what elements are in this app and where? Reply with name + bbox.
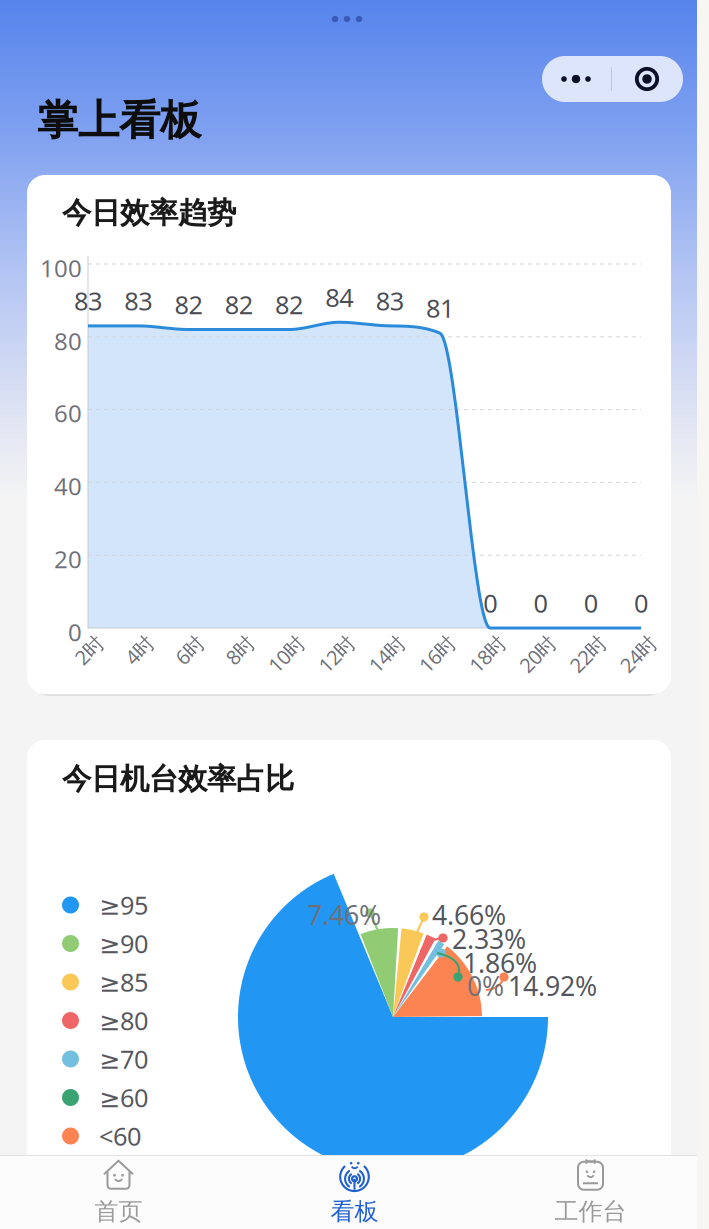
button[interactable]: 首页 [0, 1155, 236, 1229]
staticText: 82 [275, 287, 303, 321]
staticText: 80 [54, 325, 82, 357]
button[interactable]: ≥85 [62, 966, 172, 998]
staticText: <60 [99, 1119, 141, 1153]
button[interactable]: ≥70 [62, 1043, 172, 1075]
staticText: 83 [124, 284, 152, 317]
staticText: 看板 [330, 1197, 378, 1226]
staticText: 6时 [169, 626, 200, 652]
staticText: 0 [533, 586, 547, 620]
button[interactable]: 看板 [236, 1155, 472, 1229]
staticText: 今日机台效率占比 [62, 761, 294, 797]
staticText: 4.66% [432, 897, 506, 932]
staticText: 22时 [561, 626, 603, 652]
staticText: 100 [40, 252, 82, 284]
staticText: 2.33% [452, 921, 526, 956]
staticText: 1.86% [463, 945, 537, 980]
staticText: 14时 [360, 626, 402, 652]
button[interactable]: 工作台 [472, 1155, 708, 1229]
staticText: 0 [584, 586, 598, 620]
staticText: 7.46% [307, 897, 381, 932]
staticText: 0 [483, 586, 497, 620]
staticText: 10时 [259, 626, 301, 652]
staticText: 2时 [69, 626, 100, 652]
staticText: ≥60 [99, 1081, 148, 1114]
staticText: 18时 [460, 626, 502, 652]
staticText: 82 [225, 287, 253, 321]
staticText: 首页 [94, 1197, 142, 1226]
button[interactable]: <60 [62, 1120, 172, 1152]
button[interactable]: ≥95 [62, 889, 172, 921]
staticText: ≥70 [99, 1042, 148, 1076]
staticText: 0% [467, 968, 504, 1003]
staticText: 82 [174, 287, 202, 321]
staticText: ≥80 [99, 1004, 148, 1037]
button[interactable]: ≥80 [62, 1004, 172, 1036]
staticText: 84 [325, 280, 353, 314]
staticText: 今日效率趋势 [62, 195, 236, 231]
staticText: 0 [634, 586, 648, 620]
staticText: 83 [376, 284, 404, 317]
staticText: 20 [54, 543, 82, 575]
staticText: ≥90 [99, 927, 148, 960]
button[interactable]: ≥60 [62, 1081, 172, 1113]
staticText: 40 [54, 470, 82, 502]
staticText: 14.92% [508, 968, 597, 1003]
staticText: 83 [74, 284, 102, 317]
button[interactable]: More [542, 56, 611, 102]
button[interactable]: ≥90 [62, 927, 172, 959]
staticText: 81 [426, 291, 454, 325]
staticText: ≥85 [99, 965, 148, 999]
staticText: 8时 [220, 626, 251, 652]
staticText: 工作台 [554, 1197, 626, 1226]
staticText: 12时 [309, 626, 351, 652]
staticText: 24时 [611, 626, 653, 652]
staticText: 掌上看板 [37, 95, 201, 146]
staticText: 20时 [510, 626, 552, 652]
staticText: ≥95 [99, 888, 148, 922]
staticText: 16时 [410, 626, 452, 652]
staticText: 60 [54, 397, 82, 429]
button[interactable]: Close [611, 56, 683, 102]
staticText: 4时 [119, 626, 150, 652]
staticText: 0 [68, 616, 82, 648]
